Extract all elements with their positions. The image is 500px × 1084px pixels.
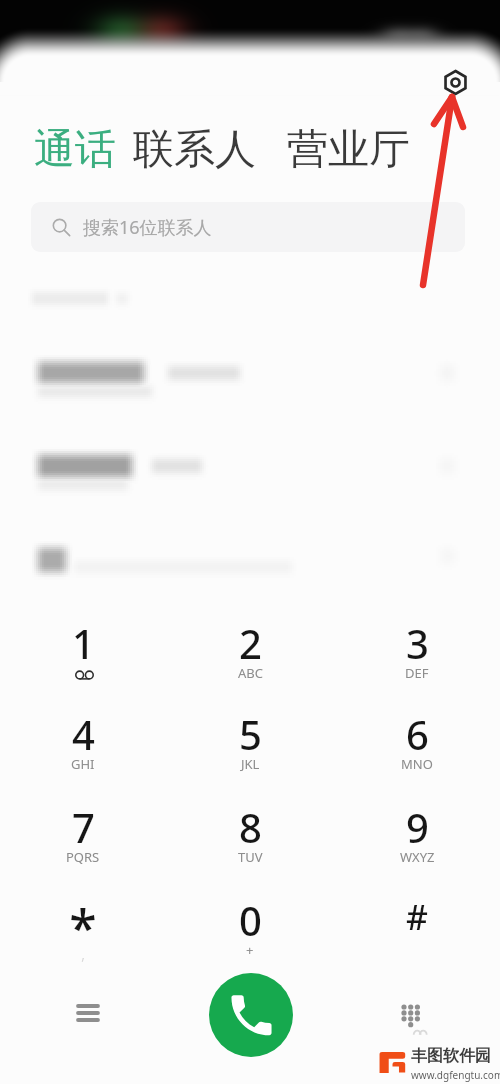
button[interactable]: 联系人 (133, 124, 256, 176)
button[interactable]: 7 (28, 800, 138, 884)
staticText: ABC (238, 664, 263, 682)
button[interactable]: 1 (28, 616, 138, 700)
staticText: # (406, 894, 428, 940)
button[interactable]: 搜索16位联系人 (31, 202, 465, 252)
button[interactable]: 5 (195, 707, 305, 791)
button[interactable]: # (362, 893, 472, 977)
button[interactable]: Keypad (382, 987, 432, 1037)
staticText: 5 (239, 707, 262, 761)
staticText: 搜索16位联系人 (83, 215, 212, 240)
button[interactable]: Call (209, 973, 293, 1057)
button[interactable]: Call log list (64, 989, 112, 1037)
staticText: 营业厅 (287, 124, 410, 176)
button[interactable]: 营业厅 (287, 124, 410, 176)
staticText: 8 (239, 800, 262, 854)
button[interactable]: 3 (362, 616, 472, 700)
staticText: 6 (406, 707, 429, 761)
staticText: 联系人 (133, 124, 256, 176)
staticText: 9 (406, 800, 429, 854)
staticText: MNO (401, 755, 433, 773)
button[interactable]: 8 (195, 800, 305, 884)
staticText: PQRS (66, 848, 100, 866)
button[interactable]: 6 (362, 707, 472, 791)
button[interactable]: * (28, 893, 138, 977)
staticText: * (69, 893, 97, 961)
staticText: JKL (241, 755, 260, 773)
button[interactable]: 0 (195, 893, 305, 977)
staticText: 7 (72, 800, 95, 854)
staticText: TUV (238, 848, 263, 866)
button[interactable]: 2 (195, 616, 305, 700)
staticText: 丰图软件园 (411, 1046, 491, 1066)
staticText: www.dgfengtu.com (411, 1068, 500, 1082)
button[interactable]: 4 (28, 707, 138, 791)
button[interactable]: 9 (362, 800, 472, 884)
staticText: 3 (406, 616, 429, 670)
staticText: 2 (239, 616, 262, 670)
staticText: + (246, 941, 254, 959)
staticText: , (81, 943, 86, 965)
button[interactable]: Settings (435, 62, 475, 102)
staticText: GHI (71, 755, 95, 773)
staticText: 通话 (34, 124, 116, 176)
staticText: 4 (72, 707, 95, 761)
staticText: WXYZ (400, 848, 435, 866)
staticText: DEF (405, 664, 429, 682)
button[interactable]: 通话 (34, 124, 116, 176)
staticText: 1 (72, 616, 95, 670)
staticText: 0 (239, 893, 262, 947)
